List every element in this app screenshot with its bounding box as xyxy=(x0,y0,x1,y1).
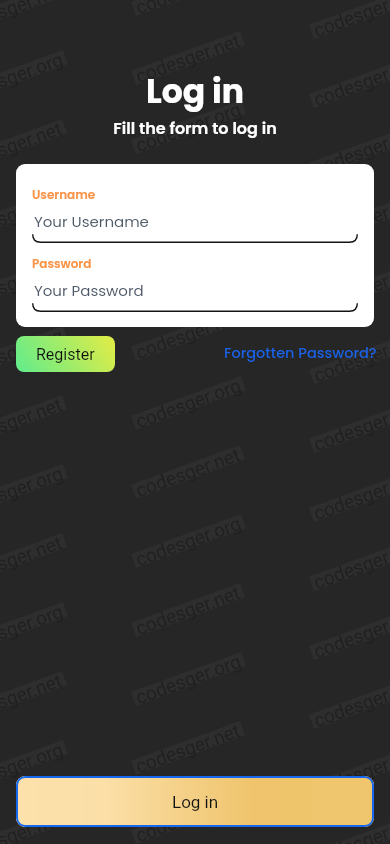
button[interactable]: Your Password xyxy=(32,273,358,312)
staticText: Fill the form to log in xyxy=(0,117,390,139)
staticText: Password xyxy=(32,255,92,272)
button[interactable]: Log in xyxy=(16,776,374,827)
staticText: Username xyxy=(32,186,96,203)
staticText: Log in xyxy=(0,68,390,114)
staticText: Forgotten Password? xyxy=(224,343,377,363)
button[interactable]: Your Username xyxy=(32,204,358,243)
button[interactable]: Register xyxy=(16,336,115,372)
staticText: Register xyxy=(36,345,95,364)
staticText: Log in xyxy=(172,792,219,812)
staticText: Your Username xyxy=(34,211,149,232)
button[interactable]: Forgotten Password? xyxy=(224,343,377,363)
staticText: Your Password xyxy=(34,280,144,301)
